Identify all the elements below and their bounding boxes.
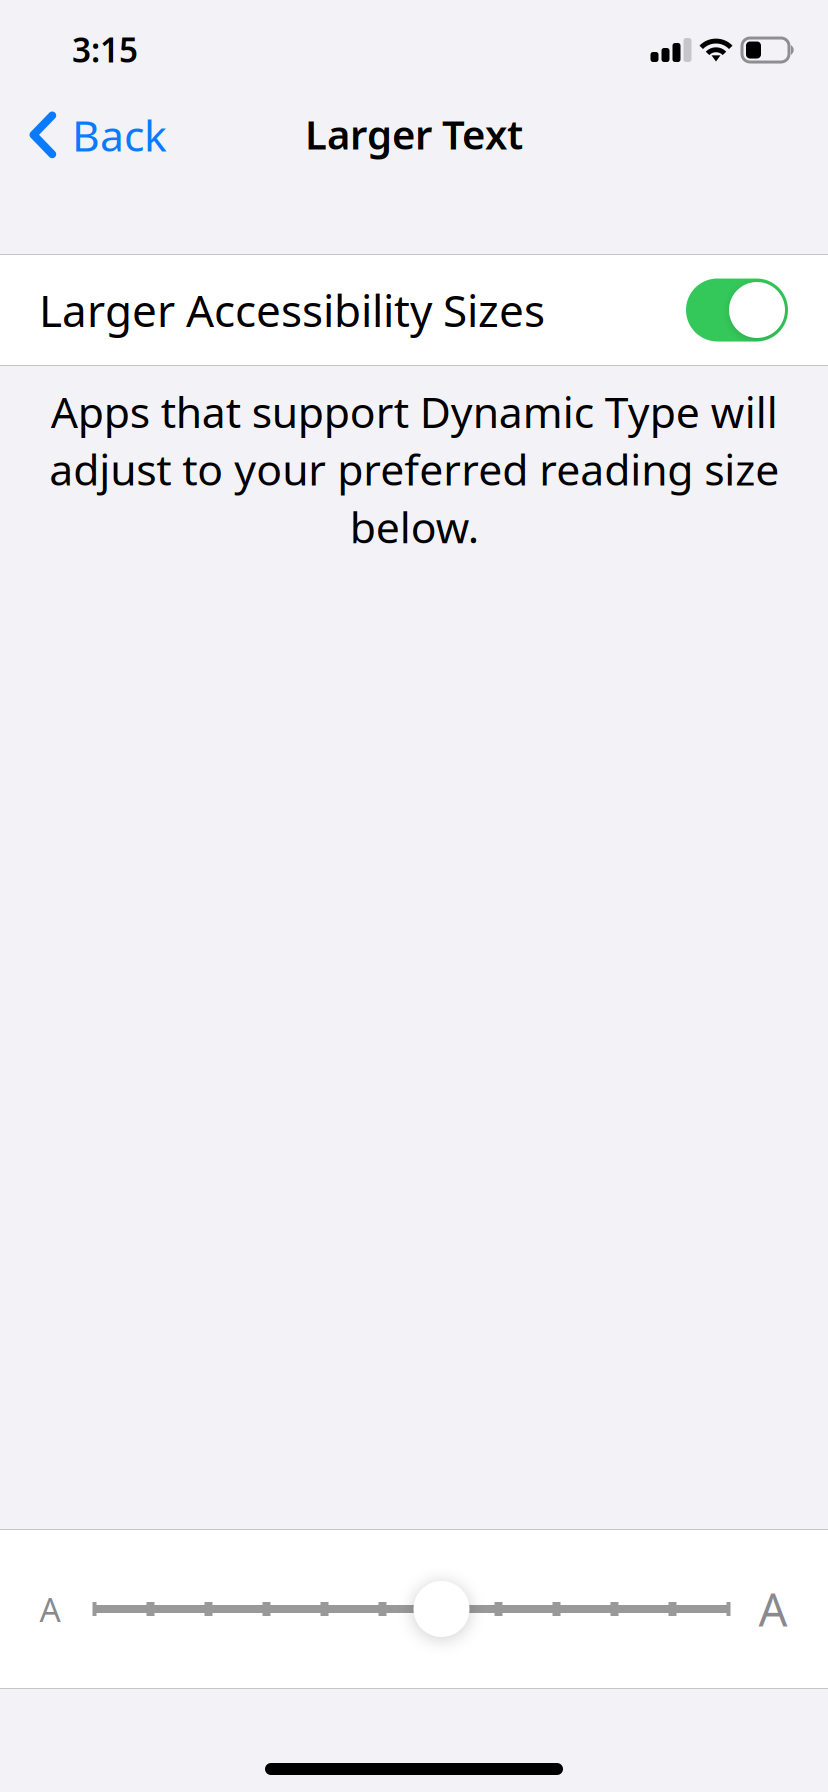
staticText: A	[758, 1579, 787, 1639]
staticText: Larger Accessibility Sizes	[39, 281, 545, 339]
staticText: Back	[72, 107, 167, 163]
button[interactable]: Text size	[0, 1530, 828, 1688]
button[interactable]: Back	[0, 88, 230, 184]
button[interactable]: Larger Accessibility Sizes	[0, 255, 828, 365]
staticText: 3:15	[72, 27, 138, 72]
staticText: Larger Text	[305, 107, 523, 160]
staticText: A	[39, 1587, 60, 1631]
staticText: Apps that support Dynamic Type will adju…	[49, 383, 779, 555]
